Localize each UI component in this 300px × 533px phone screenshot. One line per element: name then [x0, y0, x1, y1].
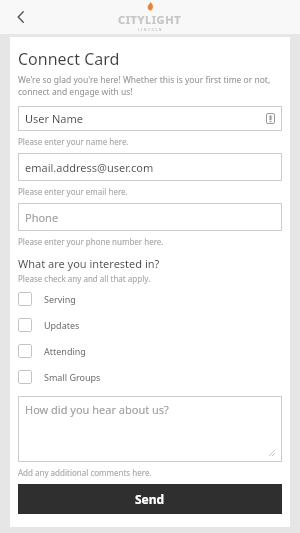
staticText: Updates — [44, 319, 80, 331]
button[interactable]: Phone — [18, 203, 282, 231]
staticText: Please enter your name here. — [18, 136, 129, 147]
staticText: Please check any and all that apply. — [18, 273, 151, 284]
button[interactable]: User Name — [18, 106, 282, 131]
staticText: Connect Card — [18, 48, 120, 70]
staticText: Attending — [44, 345, 86, 357]
staticText: What are you interested in? — [18, 256, 160, 271]
button[interactable]: How did you hear about us? — [18, 396, 282, 462]
staticText: Small Groups — [44, 371, 101, 383]
button[interactable]: Attending — [18, 338, 282, 364]
staticText: Please enter your phone number here. — [18, 236, 164, 247]
button[interactable]: Serving — [18, 286, 282, 312]
staticText: Phone — [25, 210, 275, 225]
staticText: Serving — [44, 293, 76, 305]
staticText: User Name — [25, 111, 266, 126]
staticText: Please enter your email here. — [18, 186, 128, 197]
button[interactable]: Updates — [18, 312, 282, 338]
staticText: We're so glad you're here! Whether this … — [18, 74, 282, 98]
button[interactable]: Back — [8, 4, 34, 30]
button[interactable]: email.address@user.com — [18, 153, 282, 181]
staticText: How did you hear about us? — [25, 402, 169, 417]
staticText: Send — [135, 491, 165, 507]
button[interactable]: Send — [18, 484, 282, 514]
staticText: CITYLIGHT — [118, 12, 182, 27]
button[interactable]: Small Groups — [18, 364, 282, 390]
staticText: email.address@user.com — [25, 160, 275, 175]
staticText: LINCOLN — [138, 27, 163, 32]
staticText: Add any additional comments here. — [18, 467, 152, 478]
